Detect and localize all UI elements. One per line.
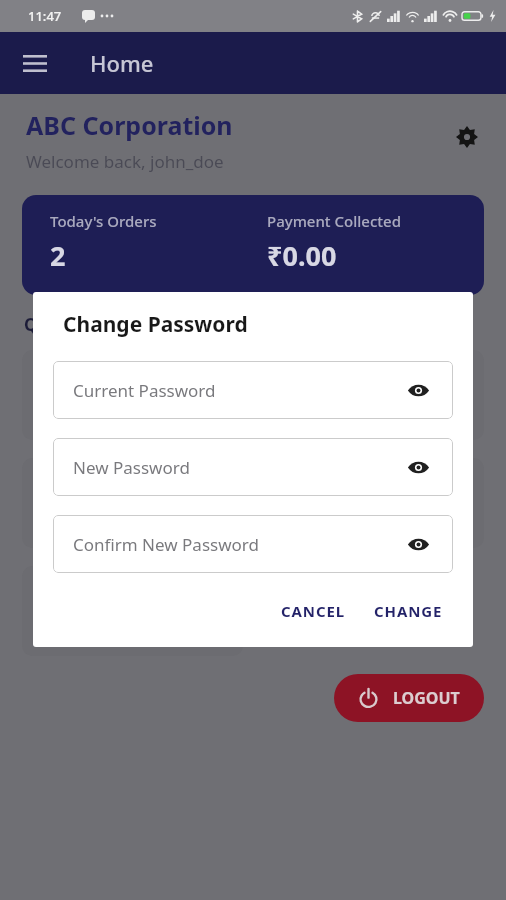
- button[interactable]: New Password: [53, 438, 453, 496]
- button[interactable]: Toggle password visibility: [401, 527, 435, 561]
- staticText: Today's Orders: [50, 211, 157, 231]
- staticText: Billing: [110, 511, 156, 531]
- staticText: Confirm New Password: [73, 533, 401, 556]
- staticText: ABC Corporation: [26, 108, 233, 142]
- staticText: Current Password: [73, 379, 401, 402]
- staticText: Quick Actions: [24, 313, 141, 336]
- staticText: 11:47: [28, 7, 62, 25]
- button[interactable]: Today's Orders: [22, 195, 484, 295]
- staticText: ₹0.00: [267, 237, 337, 274]
- staticText: CHANGE: [374, 601, 443, 621]
- staticText: Payment Collected: [267, 211, 401, 231]
- button[interactable]: Customers: [263, 350, 484, 440]
- button[interactable]: Orders: [22, 350, 243, 440]
- staticText: Bill Reports: [332, 510, 416, 530]
- button[interactable]: CANCEL: [273, 593, 354, 629]
- button[interactable]: CHANGE: [366, 593, 451, 629]
- button[interactable]: LOGOUT: [334, 674, 484, 722]
- button[interactable]: Current Password: [53, 361, 453, 419]
- staticText: Welcome back, john_doe: [26, 150, 224, 173]
- button[interactable]: Billing: [22, 458, 243, 548]
- staticText: Customers: [334, 403, 413, 423]
- button[interactable]: Toggle password visibility: [401, 373, 435, 407]
- button[interactable]: Toggle password visibility: [401, 450, 435, 484]
- button[interactable]: Open navigation menu: [12, 40, 58, 86]
- button[interactable]: Settings: [444, 114, 490, 160]
- staticText: Home: [90, 48, 154, 78]
- staticText: 2: [50, 237, 66, 274]
- staticText: New Password: [73, 456, 401, 479]
- staticText: CANCEL: [281, 601, 346, 621]
- staticText: Orders: [107, 403, 158, 423]
- staticText: LOGOUT: [393, 687, 460, 709]
- button[interactable]: Bill Reports: [263, 458, 484, 548]
- button[interactable]: Confirm New Password: [53, 515, 453, 573]
- staticText: Change Password: [63, 310, 248, 339]
- button[interactable]: payment Reports: [22, 566, 243, 656]
